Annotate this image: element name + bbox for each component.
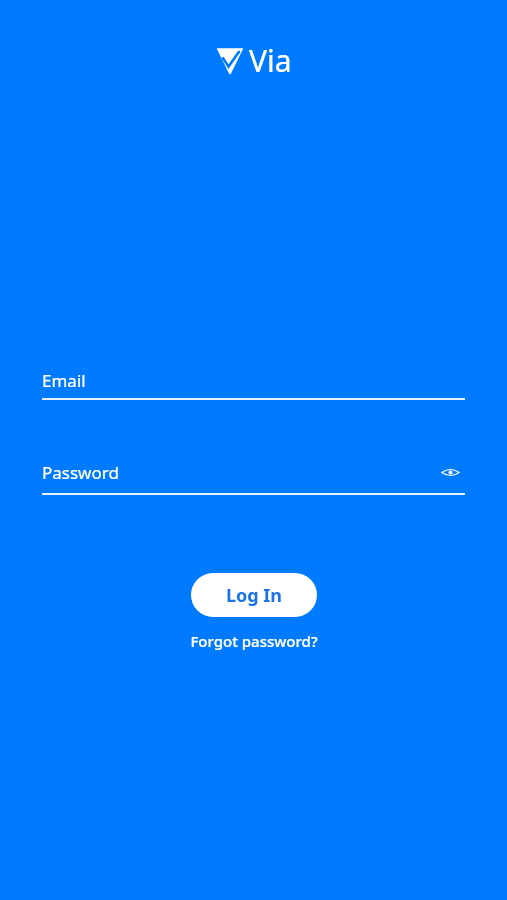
staticText: Log In — [226, 583, 283, 608]
button[interactable]: Show password — [435, 457, 465, 487]
staticText: Password — [42, 461, 435, 484]
staticText: Forgot password? — [190, 631, 318, 651]
staticText: Email — [42, 369, 465, 392]
button[interactable]: Via logo — [215, 40, 292, 81]
button[interactable]: Log In — [191, 573, 317, 617]
button[interactable]: Forgot password? — [182, 629, 326, 653]
staticText: Via — [249, 40, 292, 81]
